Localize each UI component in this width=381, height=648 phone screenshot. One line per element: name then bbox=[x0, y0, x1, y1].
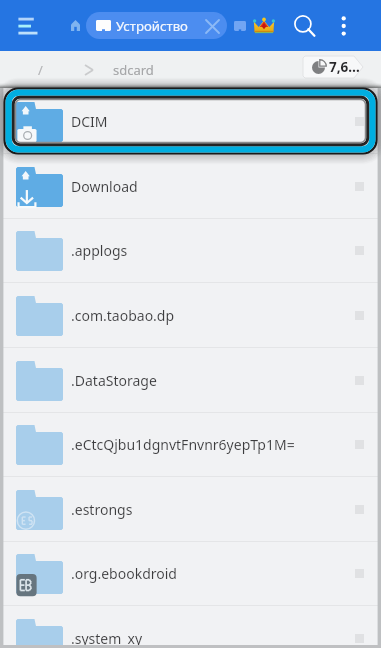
button[interactable]: .DataStorage bbox=[3, 348, 378, 413]
button[interactable]: .eCtcQjbu1dgnvtFnvnr6yepTp1M= bbox=[3, 412, 378, 477]
button[interactable]: Navigation menu bbox=[6, 6, 46, 46]
button[interactable]: New tab bbox=[229, 15, 251, 37]
button[interactable]: .applogs bbox=[3, 218, 378, 283]
staticText: 7,6… bbox=[329, 58, 360, 76]
button[interactable]: Устройство bbox=[86, 12, 227, 39]
staticText: .applogs bbox=[71, 241, 128, 260]
button[interactable]: More options bbox=[326, 12, 354, 40]
button[interactable]: .com.taobao.dp bbox=[3, 283, 378, 348]
button[interactable]: Home bbox=[62, 12, 89, 39]
staticText: DCIM bbox=[71, 112, 108, 131]
staticText: .com.taobao.dp bbox=[71, 306, 175, 325]
button[interactable]: Search bbox=[286, 10, 317, 41]
staticText: Download bbox=[71, 177, 138, 196]
button[interactable]: Storage usage 7,6 bbox=[303, 56, 363, 78]
button[interactable]: .system_xy bbox=[3, 606, 378, 648]
button[interactable]: / bbox=[38, 61, 43, 79]
staticText: .org.ebookdroid bbox=[71, 564, 177, 583]
button[interactable]: sdcard bbox=[113, 61, 154, 79]
button[interactable]: .org.ebookdroid bbox=[3, 541, 378, 606]
button[interactable]: Premium bbox=[250, 11, 278, 39]
button[interactable]: Close tab bbox=[200, 14, 224, 38]
button[interactable]: DCIM bbox=[3, 89, 378, 154]
button[interactable]: .estrongs bbox=[3, 477, 378, 542]
staticText: Устройство bbox=[116, 17, 188, 35]
staticText: .system_xy bbox=[71, 629, 143, 648]
staticText: .eCtcQjbu1dgnvtFnvnr6yepTp1M= bbox=[71, 435, 295, 454]
staticText: / bbox=[38, 61, 43, 79]
staticText: .estrongs bbox=[71, 500, 133, 519]
button[interactable]: Download bbox=[3, 154, 378, 219]
staticText: .DataStorage bbox=[71, 371, 157, 390]
staticText: sdcard bbox=[113, 61, 154, 79]
